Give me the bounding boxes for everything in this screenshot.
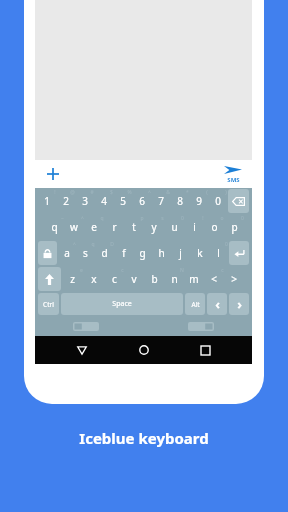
staticText: z — [70, 272, 75, 286]
staticText: v — [131, 272, 137, 286]
staticText: u — [171, 220, 178, 234]
button[interactable]: Key y — [144, 214, 164, 240]
button[interactable]: Key o — [204, 214, 224, 240]
staticText: ‹ — [215, 295, 220, 313]
button[interactable]: Key s — [76, 240, 95, 266]
button[interactable]: Key 9 — [189, 188, 208, 214]
button[interactable]: Cursor right — [229, 293, 249, 315]
staticText: 8 — [177, 194, 183, 208]
staticText: r — [112, 220, 117, 234]
staticText: > — [231, 272, 237, 286]
button[interactable]: Key m — [184, 266, 204, 292]
button[interactable]: Cursor left — [207, 293, 227, 315]
button[interactable]: Enter — [229, 241, 249, 265]
button[interactable]: Key 0 — [208, 188, 227, 214]
button[interactable]: Key g — [133, 240, 152, 266]
staticText: 7 — [158, 194, 164, 208]
staticText: g — [139, 246, 146, 260]
staticText: ( — [206, 189, 208, 196]
button[interactable]: Key x — [83, 266, 104, 292]
button[interactable]: Key f — [114, 240, 133, 266]
button[interactable]: Key 7 — [151, 188, 170, 214]
staticText: SMS — [227, 176, 240, 184]
staticText: d — [101, 246, 108, 260]
button[interactable]: Key t — [124, 214, 144, 240]
staticText: c — [221, 267, 224, 274]
staticText: Iceblue keyboard — [79, 428, 209, 448]
button[interactable]: Layout right — [188, 322, 214, 331]
button[interactable]: Key 4 — [94, 188, 113, 214]
staticText: q — [51, 220, 58, 234]
button[interactable]: Add attachment — [42, 163, 64, 185]
staticText: w — [70, 220, 78, 234]
staticText: 0 — [225, 241, 228, 248]
button[interactable]: Home — [129, 336, 159, 364]
button[interactable]: Key d — [95, 240, 114, 266]
staticText: N — [180, 267, 184, 274]
button[interactable]: Caps lock — [38, 241, 57, 265]
staticText: q — [100, 215, 104, 222]
button[interactable]: Alt — [185, 293, 205, 315]
button[interactable]: Key h — [152, 240, 171, 266]
button[interactable]: Key u — [164, 214, 184, 240]
staticText: ) — [225, 189, 227, 196]
button[interactable]: Key q — [44, 214, 64, 240]
button[interactable]: Key i — [184, 214, 204, 240]
button[interactable]: Ctrl — [38, 293, 59, 315]
button[interactable]: Key k — [190, 240, 209, 266]
button[interactable]: Key 6 — [132, 188, 151, 214]
staticText: c — [112, 272, 117, 286]
button[interactable]: Key r — [104, 214, 124, 240]
staticText: i — [193, 220, 196, 234]
button[interactable]: Key z — [62, 266, 83, 292]
button[interactable]: Key e — [84, 214, 104, 240]
staticText: 0 — [241, 215, 244, 222]
button[interactable]: Back — [67, 336, 97, 364]
staticText: f — [122, 246, 126, 260]
staticText: t — [132, 220, 136, 234]
staticText: l — [217, 246, 220, 260]
button[interactable]: Space — [61, 293, 183, 315]
staticText: * — [186, 189, 189, 196]
staticText: % — [127, 189, 132, 196]
staticText: m — [189, 272, 199, 286]
button[interactable]: Key 5 — [113, 188, 132, 214]
staticText: 2 — [63, 194, 69, 208]
button[interactable]: Key a — [58, 240, 76, 266]
button[interactable]: Key 8 — [170, 188, 189, 214]
button[interactable]: Key 3 — [75, 188, 94, 214]
button[interactable]: Key b — [144, 266, 164, 292]
button[interactable]: Shift — [38, 267, 61, 291]
staticText: ^ — [73, 241, 76, 248]
button[interactable]: Key > — [224, 266, 244, 292]
staticText: 5 — [120, 194, 126, 208]
staticText: 4 — [101, 194, 107, 208]
button[interactable]: Key j — [171, 240, 190, 266]
button[interactable]: Key n — [164, 266, 184, 292]
button[interactable]: Key < — [204, 266, 224, 292]
button[interactable]: Key 2 — [56, 188, 75, 214]
staticText: # — [90, 189, 94, 196]
staticText: h — [158, 246, 165, 260]
staticText: a — [64, 246, 70, 260]
button[interactable]: Key v — [124, 266, 144, 292]
button[interactable]: Key w — [64, 214, 84, 240]
button[interactable]: Key 1 — [37, 188, 56, 214]
button[interactable]: Layout left — [73, 322, 99, 331]
button[interactable]: Send SMS — [219, 165, 247, 184]
button[interactable]: Recents — [190, 336, 220, 364]
staticText: q — [91, 241, 95, 248]
staticText: 9 — [196, 194, 202, 208]
staticText: › — [237, 295, 242, 313]
button[interactable]: Backspace — [228, 189, 249, 213]
staticText: ^ — [148, 189, 151, 196]
staticText: ^ — [81, 215, 84, 222]
staticText: c — [121, 267, 124, 274]
button[interactable]: Key c — [104, 266, 124, 292]
button[interactable]: Key l — [209, 240, 228, 266]
button[interactable]: Key p — [224, 214, 244, 240]
staticText: e — [91, 220, 97, 234]
